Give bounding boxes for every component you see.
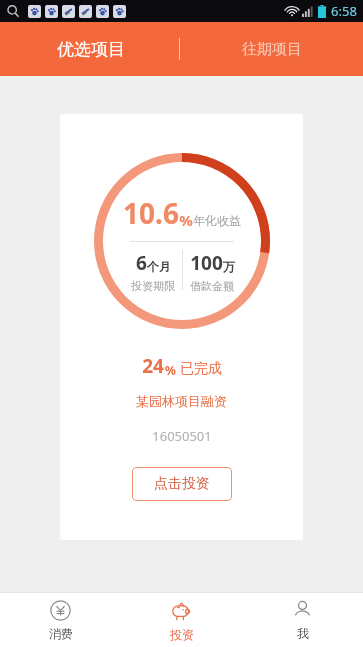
staticText: 消费: [49, 626, 73, 641]
staticText: 投资: [170, 627, 194, 642]
staticText: 6: [136, 250, 147, 276]
button[interactable]: 优选项目: [0, 22, 181, 76]
staticText: 年化收益: [193, 213, 241, 228]
staticText: 100: [190, 250, 223, 276]
staticText: 10.6: [123, 194, 179, 232]
staticText: %: [165, 362, 176, 378]
staticText: 优选项目: [57, 39, 125, 60]
staticText: %: [179, 210, 193, 230]
button[interactable]: 消费: [0, 594, 121, 646]
staticText: 6:58: [331, 2, 357, 20]
staticText: 万: [223, 259, 235, 274]
staticText: 某园林项目融资: [136, 393, 227, 409]
staticText: 已完成: [180, 360, 222, 378]
staticText: 24: [142, 353, 164, 379]
other: 我: [292, 600, 313, 621]
staticText: 点击投资: [154, 475, 210, 493]
button[interactable]: 投资: [121, 593, 242, 647]
staticText: 16050501: [152, 427, 212, 445]
staticText: 个月: [147, 259, 171, 274]
staticText: 投资期限: [131, 279, 175, 293]
staticText: 往期项目: [242, 40, 302, 59]
staticText: 借款金额: [190, 279, 234, 293]
staticText: 我: [297, 626, 309, 641]
button[interactable]: 我: [242, 594, 363, 646]
other: 消费: [50, 600, 71, 621]
other: 投资: [170, 599, 193, 622]
button[interactable]: 往期项目: [181, 22, 363, 76]
button[interactable]: 点击投资: [132, 467, 232, 501]
